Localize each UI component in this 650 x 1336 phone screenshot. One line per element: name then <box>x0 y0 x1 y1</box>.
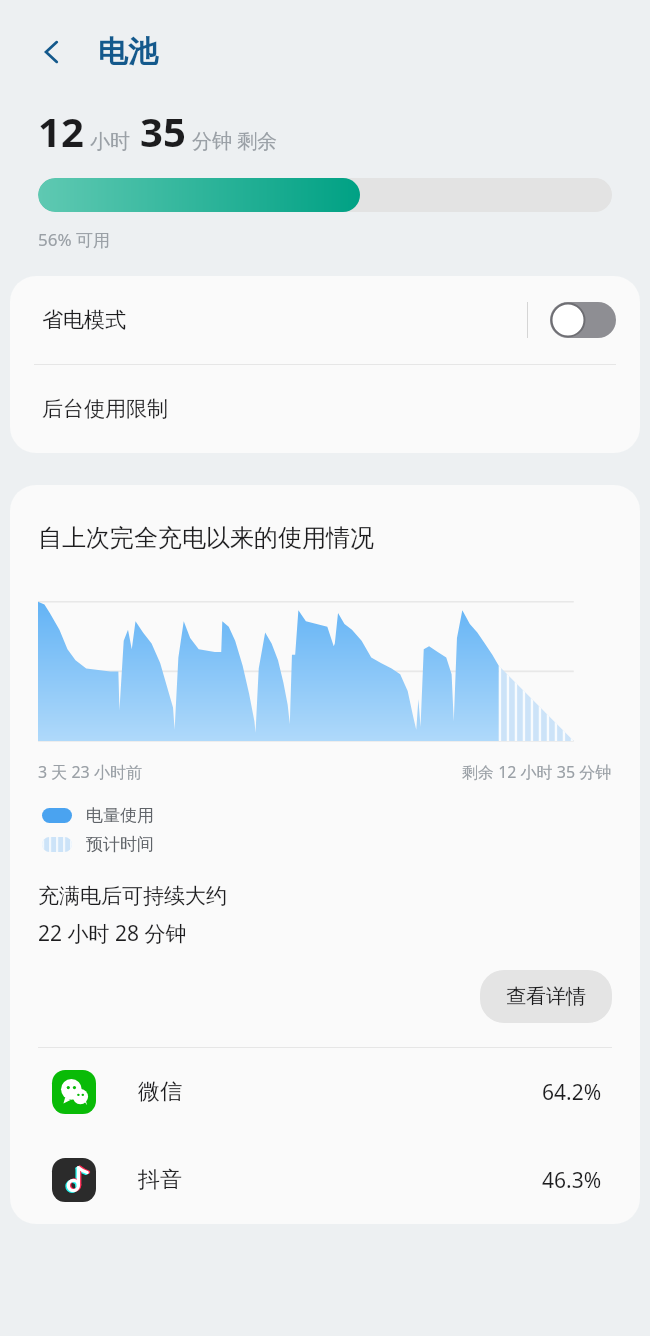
button[interactable]: 微信 <box>10 1048 640 1136</box>
staticText: 12 <box>38 104 84 158</box>
staticText: 56% 可用 <box>38 228 110 251</box>
staticText: 电量使用 <box>86 805 154 826</box>
staticText: 小时 <box>90 129 130 154</box>
staticText: 自上次完全充电以来的使用情况 <box>38 523 374 553</box>
staticText: 剩余 12 小时 35 分钟 <box>462 761 612 783</box>
staticText: 充满电后可持续大约 <box>38 883 227 909</box>
button[interactable]: 查看详情 <box>480 970 612 1023</box>
staticText: 电池 <box>98 33 158 71</box>
button[interactable]: 抖音 <box>10 1136 640 1224</box>
staticText: 22 小时 28 分钟 <box>38 919 187 948</box>
staticText: 35 <box>140 104 186 158</box>
staticText: 查看详情 <box>506 984 586 1009</box>
staticText: 分钟 剩余 <box>192 127 278 154</box>
staticText: 46.3% <box>542 1166 602 1195</box>
staticText: 64.2% <box>542 1078 602 1107</box>
staticText: 后台使用限制 <box>42 396 168 422</box>
button[interactable]: 后台使用限制 <box>10 365 640 453</box>
staticText: 预计时间 <box>86 834 154 855</box>
staticText: 省电模式 <box>42 307 126 333</box>
staticText: 3 天 23 小时前 <box>38 761 142 783</box>
button[interactable]: Back <box>26 26 78 78</box>
button[interactable]: 省电模式 <box>10 276 640 364</box>
staticText: 抖音 <box>138 1166 182 1194</box>
button[interactable]: 省电模式 toggle <box>550 302 616 338</box>
staticText: 微信 <box>138 1078 182 1106</box>
